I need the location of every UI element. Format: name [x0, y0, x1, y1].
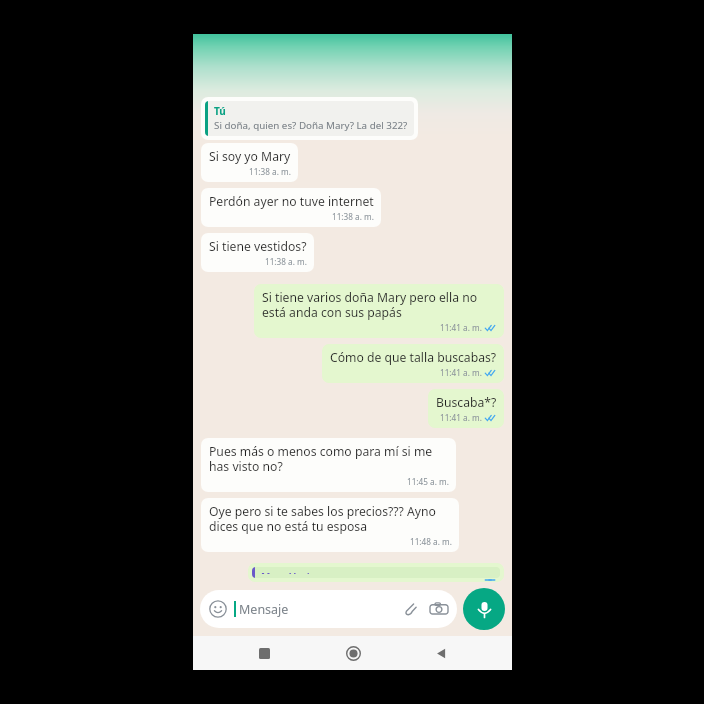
button[interactable]: Cómo de que talla buscabas?	[322, 344, 504, 383]
button[interactable]: Oye pero si te sabes los precios??? Ayno…	[201, 498, 459, 552]
button[interactable]: Si tiene varios doña Mary pero ella no e…	[254, 284, 504, 338]
staticText: Si doña, quien es? Doña Mary? La del 322…	[214, 119, 408, 132]
button[interactable]: Atrás	[424, 636, 458, 670]
staticText: 11:38 a. m.	[265, 256, 307, 267]
staticText: 11:38 a. m.	[332, 211, 374, 222]
staticText: Mensaje	[239, 601, 289, 618]
button[interactable]: Si tiene vestidos?	[201, 233, 314, 272]
button[interactable]: Pues más o menos como para mí si me has …	[201, 438, 456, 492]
staticText: 11:48 a. m.	[410, 536, 452, 547]
staticText: Buscaba*?	[436, 394, 497, 411]
staticText: Pues más o menos como para mí si me has …	[209, 443, 449, 475]
staticText: Tú	[214, 104, 226, 118]
button[interactable]: Grabar audio	[463, 588, 505, 630]
button[interactable]: Buscaba*?	[428, 389, 504, 428]
button[interactable]: Emoji	[209, 600, 227, 618]
staticText: Perdón ayer no tuve internet	[209, 193, 374, 210]
staticText: Oye pero si te sabes los precios??? Ayno…	[209, 503, 452, 535]
staticText: 11:41 a. m.	[440, 367, 482, 378]
button[interactable]: Perdón ayer no tuve internet	[201, 188, 381, 227]
staticText: Si tiene vestidos?	[209, 238, 307, 255]
button[interactable]: Inicio	[336, 636, 370, 670]
staticText: 11:38 a. m.	[249, 166, 291, 177]
staticText: 11:45 a. m.	[407, 476, 449, 487]
button[interactable]: Emoji	[200, 590, 457, 628]
staticText: Mary Vecina	[261, 570, 323, 574]
button[interactable]: Recientes	[247, 636, 281, 670]
button[interactable]: Cámara	[430, 600, 448, 618]
button[interactable]: Si soy yo Mary	[201, 143, 298, 182]
button[interactable]: Mary Vecina	[248, 563, 504, 582]
staticText: Si tiene varios doña Mary pero ella no e…	[262, 289, 497, 321]
staticText: 11:41 a. m.	[440, 322, 482, 333]
button[interactable]: Tú	[201, 97, 418, 140]
button[interactable]: Adjuntar	[401, 600, 419, 618]
staticText: 11:41 a. m.	[440, 412, 482, 423]
staticText: Cómo de que talla buscabas?	[330, 349, 497, 366]
staticText: Si soy yo Mary	[209, 148, 291, 165]
